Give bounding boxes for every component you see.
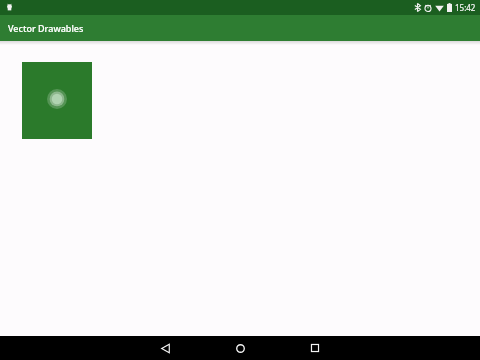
staticText: 15:42 [455,2,476,13]
staticText: Vector Drawables [8,22,84,34]
button[interactable]: Recent apps [295,336,335,360]
button[interactable]: Home [220,336,260,360]
button[interactable]: Back [145,336,185,360]
button[interactable]: Vector drawable sample [22,62,92,139]
